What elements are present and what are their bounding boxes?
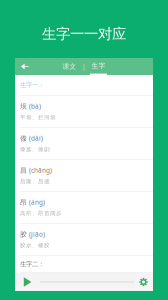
button[interactable]: 胶 xyxy=(15,224,153,256)
staticText: 课文 xyxy=(62,62,76,71)
staticText: | xyxy=(82,62,86,71)
staticText: 傣族、傣剧 xyxy=(20,146,50,153)
button[interactable]: 课文 xyxy=(58,58,80,75)
staticText: 傣 xyxy=(20,134,27,143)
button[interactable]: 昂 xyxy=(15,192,153,224)
staticText: (chāng) xyxy=(29,166,52,175)
staticText: (bà) xyxy=(29,102,41,111)
staticText: 胶水、橡胶 xyxy=(20,242,50,249)
staticText: 坝 xyxy=(20,102,27,111)
staticText: 昌隆、昌盛 xyxy=(20,178,50,185)
button[interactable]: Settings xyxy=(134,273,153,291)
button[interactable]: 坝 xyxy=(15,96,153,128)
staticText: (dǎi) xyxy=(29,134,43,143)
staticText: 胶 xyxy=(20,230,27,239)
button[interactable]: 生字 xyxy=(87,58,109,75)
staticText: 昂 xyxy=(20,198,27,207)
staticText: (áng) xyxy=(29,198,45,207)
staticText: (jiāo) xyxy=(29,230,45,239)
button[interactable]: 昌 xyxy=(15,160,153,192)
staticText: 生字 xyxy=(91,62,105,70)
staticText: 昌 xyxy=(20,166,27,175)
staticText: 生字二： xyxy=(20,260,44,268)
staticText: 生字一一对应 xyxy=(42,25,126,43)
staticText: 高昂、昂首阔步 xyxy=(20,210,62,217)
button[interactable]: Play xyxy=(15,273,40,291)
staticText: 生字一： xyxy=(20,81,44,89)
button[interactable]: Back xyxy=(15,58,35,75)
button[interactable]: 傣 xyxy=(15,128,153,160)
staticText: 平坝、拦河坝 xyxy=(20,114,56,121)
